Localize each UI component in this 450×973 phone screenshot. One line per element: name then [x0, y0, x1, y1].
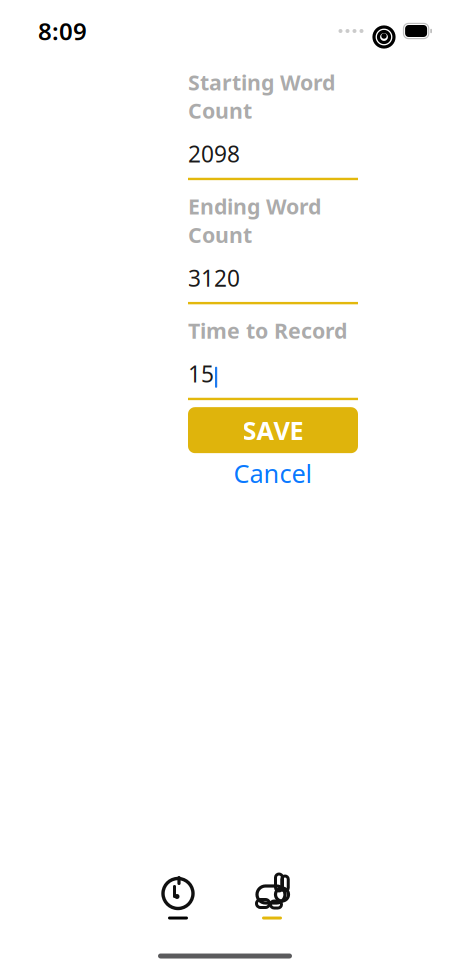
- staticText: SAVE: [242, 413, 303, 447]
- staticText: 8:09: [38, 15, 87, 47]
- staticText: Ending Word Count: [188, 192, 321, 249]
- button[interactable]: SAVE: [188, 407, 358, 453]
- staticText: Time to Record: [188, 316, 347, 345]
- staticText: Cancel: [233, 456, 312, 490]
- staticText: 3120: [188, 263, 240, 293]
- staticText: 2098: [188, 139, 240, 169]
- button[interactable]: Reading Speed: [234, 866, 310, 930]
- staticText: 15: [188, 359, 214, 389]
- button[interactable]: Timer: [140, 866, 216, 930]
- button[interactable]: Cancel: [188, 453, 358, 493]
- staticText: Starting Word Count: [188, 68, 335, 125]
